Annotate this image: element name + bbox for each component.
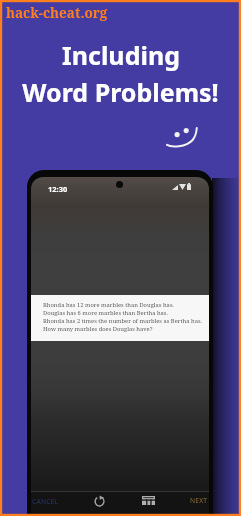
button[interactable]: Reset [87,489,112,513]
staticText: CANCEL [32,497,59,506]
staticText: hack-cheat.org [6,4,108,22]
staticText: Word Problems! [22,75,219,109]
staticText: Rhonda has 2 times the number of marbles… [43,317,202,325]
button[interactable]: CANCEL [31,489,63,513]
staticText: How many marbles does Douglas have? [43,325,153,333]
staticText: Douglas has 6 more marbles than Bertha h… [43,309,168,317]
staticText: Rhonda has 12 more marbles than Douglas … [43,301,174,309]
staticText: Including [62,38,180,72]
button[interactable]: Calculator [136,488,161,512]
staticText: NEXT [190,496,208,505]
staticText: 12:30 [48,184,68,194]
button[interactable]: NEXT [182,488,209,512]
